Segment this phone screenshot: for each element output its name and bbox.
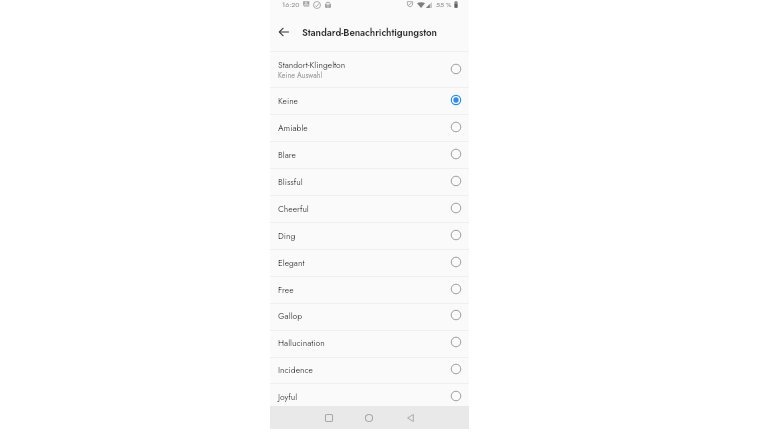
button[interactable]: Blare bbox=[270, 142, 469, 168]
button[interactable]: Amiable bbox=[270, 115, 469, 141]
staticText: Standort-Klingelton bbox=[278, 59, 346, 71]
staticText: 16:20 bbox=[282, 0, 300, 10]
staticText: 55 % bbox=[436, 0, 452, 10]
button[interactable]: Zurück bbox=[390, 406, 430, 429]
staticText: Standard-Benachrichtigungston bbox=[302, 26, 437, 40]
staticText: Amiable bbox=[278, 122, 308, 134]
button[interactable]: Joyful bbox=[270, 384, 469, 410]
staticText: Joyful bbox=[278, 391, 298, 403]
button[interactable]: Incidence bbox=[270, 357, 469, 383]
staticText: Incidence bbox=[278, 364, 313, 376]
button[interactable]: Ding bbox=[270, 223, 469, 249]
staticText: Elegant bbox=[278, 257, 305, 269]
button[interactable]: Elegant bbox=[270, 250, 469, 276]
staticText: Hallucination bbox=[278, 337, 325, 349]
staticText: Keine bbox=[278, 95, 298, 107]
button[interactable]: Gallop bbox=[270, 303, 469, 329]
button[interactable]: Standort-Klingelton bbox=[270, 52, 469, 88]
button[interactable]: Hallucination bbox=[270, 330, 469, 356]
button[interactable]: Startbildschirm bbox=[349, 406, 389, 429]
staticText: Gallop bbox=[278, 310, 303, 322]
staticText: Ding bbox=[278, 230, 296, 242]
button[interactable]: Letzte Apps bbox=[309, 406, 349, 429]
button[interactable]: Zurück bbox=[274, 22, 294, 42]
staticText: Keine Auswahl bbox=[278, 70, 323, 80]
staticText: Cheerful bbox=[278, 203, 309, 215]
staticText: Blissful bbox=[278, 176, 303, 188]
staticText: Blare bbox=[278, 149, 296, 161]
button[interactable]: Cheerful bbox=[270, 196, 469, 222]
staticText: Free bbox=[278, 284, 294, 296]
button[interactable]: Free bbox=[270, 277, 469, 303]
button[interactable]: Keine bbox=[270, 88, 469, 114]
button[interactable]: Blissful bbox=[270, 169, 469, 195]
